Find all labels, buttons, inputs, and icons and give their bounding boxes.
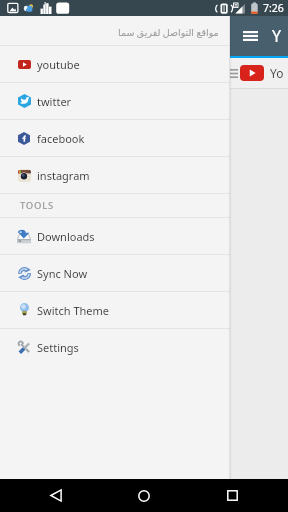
staticText: YouTube <box>272 25 288 47</box>
button[interactable]: Back <box>36 479 76 512</box>
staticText: twitter <box>37 94 72 109</box>
staticText: facebook <box>37 131 85 146</box>
staticText: youtube <box>37 57 80 72</box>
button[interactable]: Downloads <box>0 218 230 254</box>
button[interactable]: Sync Now <box>0 255 230 291</box>
staticText: TOOLS <box>20 199 54 212</box>
button[interactable]: instagram <box>0 157 230 193</box>
button[interactable]: youtube <box>0 46 230 82</box>
staticText: مواقع التواصل لفريق سما <box>118 26 219 39</box>
staticText: Downloads <box>37 229 95 244</box>
staticText: 7:26 <box>263 1 284 15</box>
button[interactable]: twitter <box>0 83 230 119</box>
staticText: Settings <box>37 340 79 355</box>
button[interactable]: Settings <box>0 329 230 365</box>
button[interactable]: Recent apps <box>212 479 252 512</box>
staticText: Switch Theme <box>37 303 110 318</box>
button[interactable]: Open navigation drawer <box>239 24 261 48</box>
staticText: instagram <box>37 168 90 183</box>
button[interactable]: Switch Theme <box>0 292 230 328</box>
button[interactable]: Home <box>124 479 164 512</box>
staticText: YouTube <box>270 65 288 81</box>
button[interactable]: facebook <box>0 120 230 156</box>
staticText: Sync Now <box>37 266 88 281</box>
